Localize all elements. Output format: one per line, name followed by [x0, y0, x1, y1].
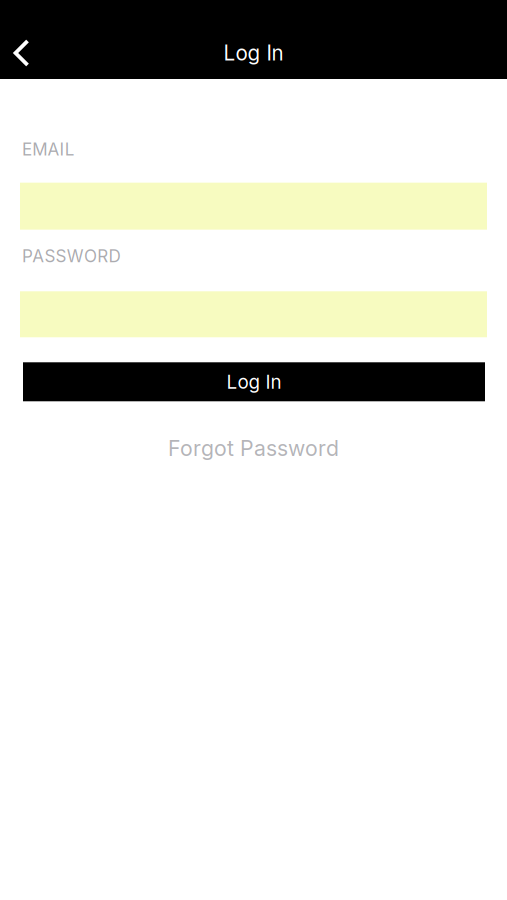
- button[interactable]: Password: [0, 291, 507, 337]
- staticText: Log In: [223, 40, 283, 65]
- button[interactable]: Log In: [0, 362, 507, 401]
- staticText: Forgot Password: [168, 435, 339, 461]
- button[interactable]: Email: [0, 183, 507, 230]
- staticText: EMAIL: [22, 139, 75, 160]
- button[interactable]: Back: [0, 27, 44, 79]
- staticText: Log In: [226, 370, 281, 393]
- button[interactable]: Forgot Password: [0, 435, 507, 461]
- staticText: PASSWORD: [22, 246, 120, 266]
